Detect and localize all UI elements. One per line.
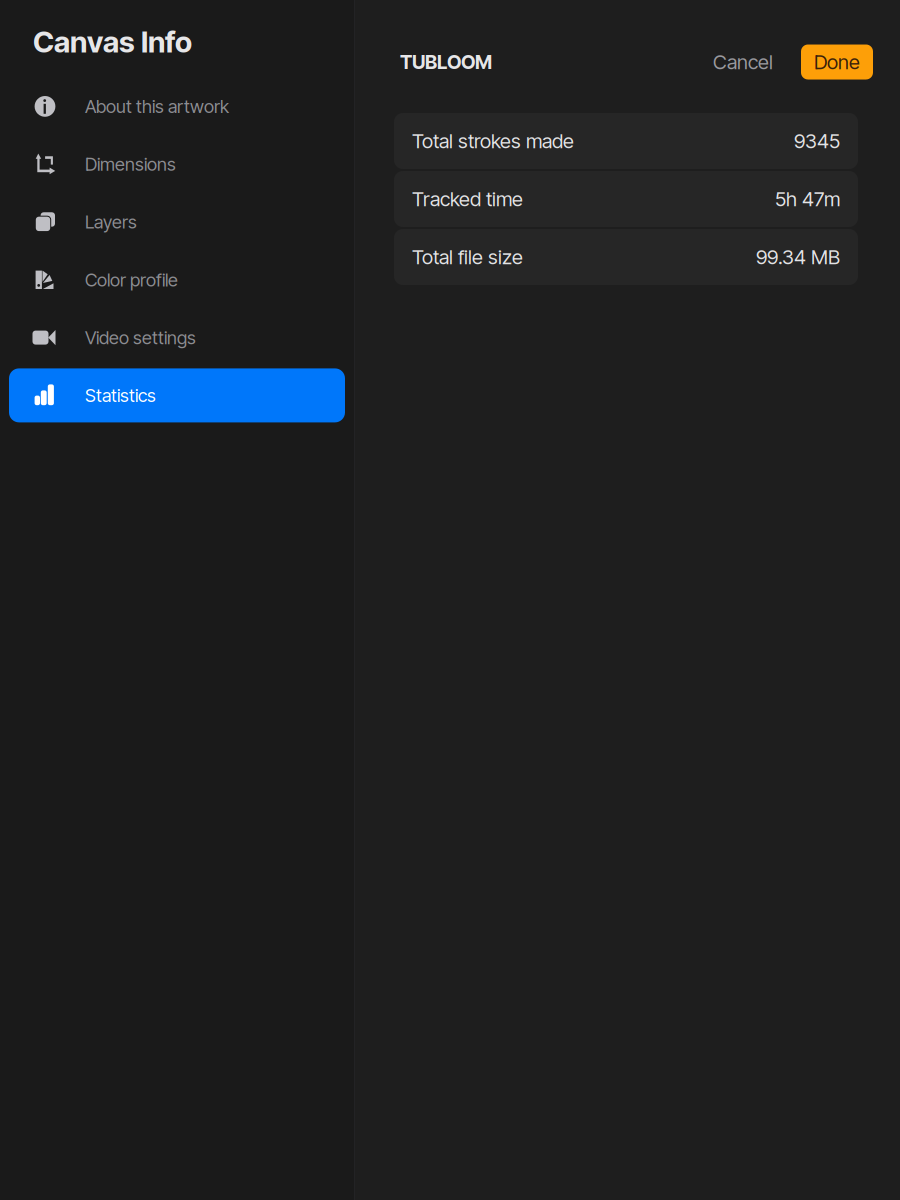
staticText: Canvas Info [33,24,192,59]
staticText: 99.34 MB [756,245,840,269]
button[interactable]: Done [801,44,873,79]
staticText: TUBLOOM [400,50,492,74]
staticText: Color profile [85,269,178,291]
staticText: Statistics [85,384,156,406]
staticText: Done [814,50,860,74]
button[interactable]: About this artwork [0,77,354,135]
staticText: Tracked time [412,187,523,211]
button[interactable]: Statistics [0,366,354,424]
staticText: Total strokes made [412,129,574,153]
staticText: Layers [85,211,137,233]
staticText: 9345 [794,129,840,153]
staticText: Video settings [85,327,196,348]
button[interactable]: Color profile [0,251,354,309]
staticText: Total file size [412,245,523,269]
staticText: Cancel [713,50,773,74]
staticText: 5h 47m [775,187,840,211]
button[interactable]: Dimensions [0,135,354,193]
staticText: Dimensions [85,153,176,175]
button[interactable]: Layers [0,193,354,251]
button[interactable]: Cancel [703,42,783,82]
staticText: About this artwork [85,95,229,117]
button[interactable]: Video settings [0,309,354,366]
